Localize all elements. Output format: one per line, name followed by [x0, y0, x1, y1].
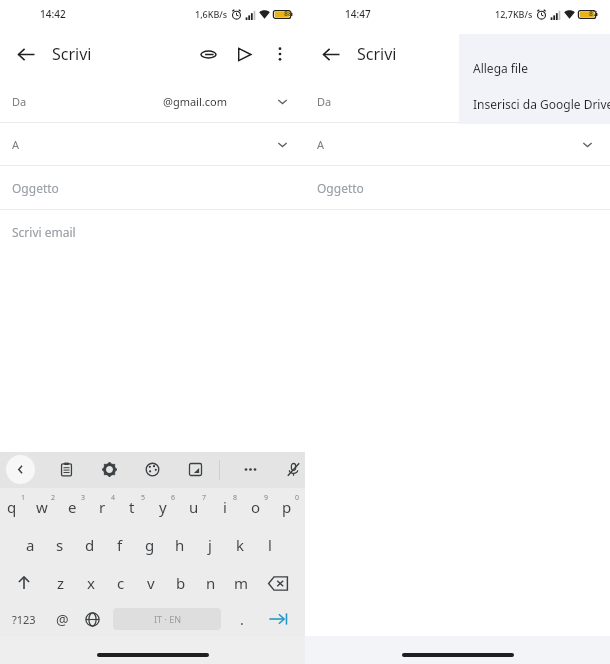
staticText: s [56, 535, 64, 555]
staticText: f [117, 535, 123, 555]
button[interactable]: Impostazioni [95, 455, 124, 484]
button[interactable]: Allega file [459, 50, 610, 86]
staticText: q [7, 497, 17, 517]
staticText: h [175, 535, 185, 555]
staticText: w [36, 497, 48, 517]
staticText: Allega file [473, 60, 528, 76]
button[interactable]: b [166, 564, 196, 602]
button[interactable]: s [45, 526, 75, 564]
staticText: 0 [295, 493, 300, 503]
button[interactable]: i [212, 488, 243, 526]
button[interactable]: A [0, 123, 305, 165]
staticText: 12,7KB/s [495, 8, 533, 20]
button[interactable]: y [150, 488, 181, 526]
staticText: 1 [21, 493, 26, 503]
button[interactable]: w [30, 488, 60, 526]
button[interactable]: Allega [189, 35, 227, 73]
staticText: Oggetto [12, 180, 59, 196]
staticText: a [26, 535, 35, 555]
button[interactable]: e [60, 488, 90, 526]
staticText: o [251, 497, 261, 517]
button[interactable]: Oggetto [305, 166, 610, 209]
staticText: ?123 [12, 612, 36, 627]
staticText: 3 [81, 493, 86, 503]
button[interactable]: o [243, 488, 274, 526]
staticText: 87 [589, 9, 598, 19]
staticText: x [87, 573, 95, 593]
staticText: 2 [51, 493, 56, 503]
button[interactable]: n [196, 564, 226, 602]
button[interactable]: Tab [261, 602, 295, 636]
button[interactable]: A [305, 123, 610, 165]
staticText: e [68, 497, 77, 517]
button[interactable]: . [228, 602, 256, 636]
button[interactable]: Indietro [313, 36, 349, 72]
button[interactable]: Backspace [261, 564, 295, 602]
button[interactable]: @ [48, 602, 76, 636]
staticText: t [129, 497, 135, 517]
button[interactable]: Da [0, 80, 305, 122]
button[interactable]: Invia [225, 35, 263, 73]
button[interactable]: Maiuscole [8, 564, 40, 602]
button[interactable]: a [15, 526, 45, 564]
staticText: . [240, 610, 244, 629]
button[interactable]: m [226, 564, 256, 602]
button[interactable]: Appunti [52, 455, 81, 484]
staticText: d [85, 535, 95, 555]
button[interactable]: z [46, 564, 76, 602]
staticText: r [99, 497, 106, 517]
button[interactable]: Inserisci da Google Drive [459, 86, 610, 122]
staticText: 7 [202, 493, 207, 503]
button[interactable]: Oggetto [0, 166, 305, 209]
button[interactable]: p [274, 488, 305, 526]
button[interactable]: q [0, 488, 30, 526]
staticText: @gmail.com [163, 94, 227, 109]
button[interactable]: l [255, 526, 285, 564]
staticText: Da [12, 94, 27, 109]
staticText: i [223, 497, 227, 517]
button[interactable]: x [76, 564, 106, 602]
staticText: 14:47 [345, 7, 371, 21]
button[interactable]: Altro [261, 35, 299, 73]
button[interactable]: Microfono disattivato [279, 455, 308, 484]
button[interactable]: k [225, 526, 255, 564]
staticText: Scrivi [357, 43, 397, 65]
button[interactable]: Temi [138, 455, 167, 484]
button[interactable]: v [136, 564, 166, 602]
button[interactable]: h [165, 526, 195, 564]
staticText: l [268, 535, 272, 555]
button[interactable]: Chiudi barra [6, 455, 35, 484]
staticText: v [147, 573, 155, 593]
button[interactable]: j [195, 526, 225, 564]
button[interactable]: r [90, 488, 120, 526]
staticText: j [208, 535, 212, 555]
button[interactable]: d [75, 526, 105, 564]
button[interactable]: t [120, 488, 150, 526]
staticText: 14:42 [40, 7, 66, 21]
button[interactable]: Ritaglio [181, 455, 210, 484]
staticText: 88 [284, 9, 293, 19]
staticText: Oggetto [317, 180, 364, 196]
staticText: n [206, 573, 216, 593]
button[interactable]: Da [305, 80, 610, 122]
button[interactable]: Indietro [8, 36, 44, 72]
staticText: 9 [264, 493, 269, 503]
staticText: y [159, 497, 167, 517]
staticText: A [317, 137, 325, 152]
staticText: Da [317, 94, 332, 109]
button[interactable]: g [135, 526, 165, 564]
button[interactable]: Scrivi email [0, 210, 305, 254]
button[interactable]: u [181, 488, 212, 526]
staticText: 1,6KB/s [195, 8, 228, 20]
button[interactable]: IT · EN [113, 608, 221, 630]
button[interactable]: ?123 [4, 602, 44, 636]
button[interactable]: Cambia lingua [78, 602, 106, 636]
staticText: k [236, 535, 245, 555]
staticText: Scrivi email [12, 224, 76, 240]
staticText: 4 [111, 493, 116, 503]
button[interactable]: c [106, 564, 136, 602]
button[interactable]: f [105, 526, 135, 564]
staticText: 5 [141, 493, 146, 503]
button[interactable]: Altro [236, 455, 265, 484]
